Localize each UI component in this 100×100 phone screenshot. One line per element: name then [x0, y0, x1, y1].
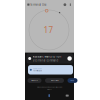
- button[interactable]: Always allow: [45, 78, 64, 83]
- staticText: always: [47, 89, 52, 90]
- staticText: Allow once: [31, 80, 38, 81]
- button[interactable]: Deny: [67, 78, 77, 83]
- staticText: Assistant wants to run: [33, 55, 62, 58]
- staticText: 17: [43, 25, 53, 35]
- button[interactable]: Account: [62, 2, 68, 7]
- button[interactable]: Keyboard: [64, 93, 70, 98]
- staticText: a terminal command: [33, 59, 59, 62]
- button[interactable]: More options: [68, 2, 72, 7]
- button[interactable]: Assistant wants to run: [26, 53, 73, 63]
- staticText: Terminal Use: [33, 70, 42, 72]
- button[interactable]: Allow once: [27, 78, 41, 83]
- staticText: npm run dev: [33, 68, 42, 70]
- staticText: Always allow: [50, 80, 58, 81]
- staticText: Online. Set depending on a local link on…: [36, 86, 62, 88]
- button[interactable]: Sidebar: [26, 2, 31, 7]
- staticText: Terminal Use: [30, 3, 47, 6]
- staticText: Deny: [70, 80, 74, 81]
- button[interactable]: Voice input: [47, 93, 51, 98]
